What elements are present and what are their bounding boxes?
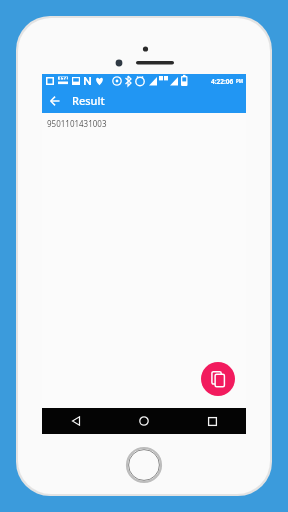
button[interactable]: Back <box>42 408 110 434</box>
staticText: Result <box>72 93 105 108</box>
staticText: 9501101431003 <box>47 118 107 129</box>
staticText: 174 <box>59 76 68 83</box>
staticText: 4:22:06 <box>211 77 234 86</box>
button[interactable]: Recent apps <box>178 408 246 434</box>
button[interactable]: Home <box>125 446 163 484</box>
button[interactable]: Back <box>45 91 65 111</box>
button[interactable]: Home <box>110 408 178 434</box>
staticText: PM <box>236 78 244 84</box>
button[interactable]: Copy <box>201 362 235 396</box>
